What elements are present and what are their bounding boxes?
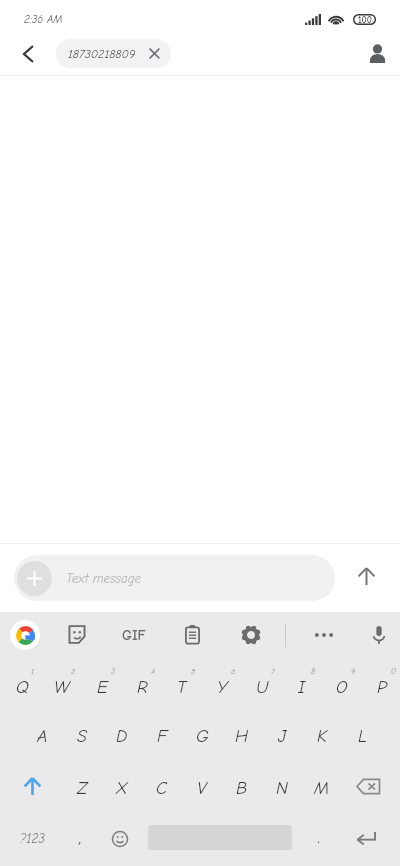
staticText: M <box>314 778 330 799</box>
staticText: 6 <box>231 667 236 676</box>
staticText: GIF <box>122 627 146 643</box>
staticText: B <box>236 778 248 799</box>
button[interactable]: V <box>180 761 220 813</box>
button[interactable]: Shift <box>0 761 60 813</box>
button[interactable]: ?123 <box>0 813 60 866</box>
button[interactable]: U <box>240 657 280 709</box>
staticText: Q <box>16 677 29 698</box>
button[interactable]: Z <box>60 761 100 813</box>
button[interactable]: Clipboard <box>163 612 221 657</box>
button[interactable]: L <box>340 709 380 761</box>
button[interactable]: K <box>300 709 340 761</box>
button[interactable]: Google assistant <box>0 612 49 657</box>
staticText: W <box>54 677 70 698</box>
staticText: I <box>298 677 306 698</box>
staticText: 0 <box>391 667 396 676</box>
staticText: L <box>358 726 367 747</box>
button[interactable]: E <box>80 657 120 709</box>
button[interactable]: . <box>300 813 340 866</box>
staticText: 18730218809 <box>68 47 136 61</box>
staticText: 7 <box>271 667 275 676</box>
staticText: F <box>157 726 168 747</box>
button[interactable]: Voice input <box>358 612 400 657</box>
staticText: N <box>276 778 288 799</box>
button[interactable]: P <box>360 657 400 709</box>
button[interactable]: Stickers <box>49 612 104 657</box>
button[interactable]: Backspace <box>340 761 400 813</box>
button[interactable]: , <box>60 813 100 866</box>
staticText: Y <box>217 677 228 698</box>
button[interactable]: Send <box>335 551 393 605</box>
button[interactable]: Attach <box>14 555 335 601</box>
button[interactable]: F <box>140 709 180 761</box>
button[interactable]: Emoji <box>100 813 140 866</box>
button[interactable]: Y <box>200 657 240 709</box>
button[interactable]: Attach <box>17 561 52 596</box>
staticText: . <box>318 827 321 848</box>
button[interactable]: A <box>20 709 60 761</box>
staticText: V <box>197 778 207 799</box>
staticText: 2 <box>71 667 76 676</box>
button[interactable]: C <box>140 761 180 813</box>
staticText: 5 <box>191 667 196 676</box>
staticText: ?123 <box>20 831 45 846</box>
staticText: 8 <box>311 667 316 676</box>
button[interactable]: X <box>100 761 140 813</box>
button[interactable]: B <box>220 761 260 813</box>
button[interactable]: M <box>300 761 340 813</box>
staticText: 4 <box>151 667 155 676</box>
button[interactable]: More options <box>290 612 358 657</box>
staticText: D <box>116 726 128 747</box>
staticText: O <box>336 677 348 698</box>
staticText: 2:36 AM <box>24 13 63 26</box>
staticText: U <box>256 677 269 698</box>
button[interactable]: Q <box>0 657 40 709</box>
staticText: T <box>177 677 187 698</box>
staticText: C <box>156 778 168 799</box>
staticText: 100 <box>358 15 372 25</box>
button[interactable]: D <box>100 709 140 761</box>
staticText: S <box>77 726 87 747</box>
button[interactable]: Contact details <box>355 31 400 76</box>
button[interactable]: I <box>280 657 320 709</box>
button[interactable]: GIF <box>104 612 163 657</box>
staticText: K <box>317 726 328 747</box>
staticText: E <box>97 677 108 698</box>
button[interactable]: W <box>40 657 80 709</box>
staticText: A <box>37 726 48 747</box>
button[interactable]: Enter <box>340 813 400 866</box>
button[interactable]: Settings <box>221 612 280 657</box>
button[interactable]: 18730218809 <box>56 39 171 68</box>
button[interactable]: J <box>260 709 300 761</box>
staticText: Text message <box>66 571 141 586</box>
staticText: P <box>377 677 388 698</box>
button[interactable]: S <box>60 709 100 761</box>
staticText: Z <box>77 778 88 799</box>
button[interactable]: O <box>320 657 360 709</box>
staticText: , <box>79 827 82 848</box>
staticText: G <box>196 726 209 747</box>
staticText: 3 <box>111 667 116 676</box>
staticText: R <box>137 677 148 698</box>
button[interactable]: Back <box>0 31 56 76</box>
button[interactable]: N <box>260 761 300 813</box>
staticText: H <box>235 726 249 747</box>
button[interactable]: H <box>220 709 260 761</box>
staticText: X <box>116 778 128 799</box>
button[interactable]: R <box>120 657 160 709</box>
staticText: 1 <box>31 667 35 676</box>
button[interactable]: G <box>180 709 220 761</box>
staticText: 9 <box>351 667 356 676</box>
button[interactable]: T <box>160 657 200 709</box>
staticText: J <box>278 726 287 747</box>
